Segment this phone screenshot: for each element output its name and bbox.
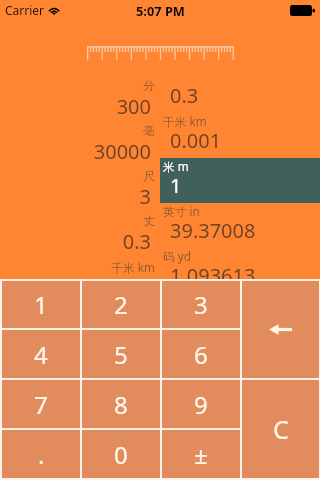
button[interactable]: 7 xyxy=(2,380,80,428)
button[interactable]: 6 xyxy=(162,330,240,378)
staticText: C xyxy=(273,412,289,446)
button[interactable]: 2 xyxy=(82,281,160,328)
button[interactable]: 千米 km xyxy=(160,113,320,158)
button[interactable]: 分 xyxy=(0,79,160,124)
staticText: 尺 xyxy=(143,169,155,184)
staticText: 39.37008 xyxy=(170,217,256,244)
button[interactable]: ± xyxy=(162,430,240,478)
staticText: 7 xyxy=(34,388,48,421)
staticText: 0 xyxy=(114,438,128,471)
staticText: 码 yd xyxy=(163,248,191,264)
button[interactable]: Backspace xyxy=(242,281,319,378)
staticText: 1.093613 xyxy=(170,262,256,289)
staticText: 4 xyxy=(34,338,48,371)
staticText: 0.0003 xyxy=(88,273,151,300)
button[interactable]: 码 yd xyxy=(160,248,320,293)
button[interactable]: C xyxy=(242,380,319,478)
staticText: ± xyxy=(194,438,208,471)
button[interactable]: 0 xyxy=(82,430,160,478)
button[interactable]: 丈 xyxy=(0,214,160,259)
button[interactable]: 8 xyxy=(82,380,160,428)
staticText: 3 xyxy=(194,288,208,321)
staticText: 千米 km xyxy=(163,113,207,129)
staticText: 丈 xyxy=(143,214,155,229)
staticText: 300 xyxy=(116,93,151,120)
button[interactable]: 米 m xyxy=(160,158,320,203)
button[interactable]: 5 xyxy=(82,330,160,378)
staticText: 3 xyxy=(139,183,151,210)
button[interactable]: 尺 xyxy=(0,169,160,214)
staticText: 2 xyxy=(114,288,128,321)
button[interactable]: 千米 km xyxy=(0,259,160,304)
button[interactable]: 0.3 xyxy=(160,68,320,113)
staticText: 6 xyxy=(194,338,208,371)
staticText: 千米 km xyxy=(111,259,155,275)
button[interactable]: 9 xyxy=(162,380,240,428)
staticText: 毫 xyxy=(143,124,155,139)
staticText: 1 xyxy=(170,172,182,199)
staticText: 0.3 xyxy=(122,228,151,255)
staticText: 1 xyxy=(34,288,48,321)
staticText: 0.001 xyxy=(170,127,222,154)
staticText: . xyxy=(38,438,45,471)
staticText: Carrier xyxy=(5,2,45,18)
button[interactable]: 1 xyxy=(2,281,80,328)
staticText: 0.3 xyxy=(170,82,199,109)
staticText: 8 xyxy=(114,388,128,421)
button[interactable]: . xyxy=(2,430,80,478)
button[interactable]: 4 xyxy=(2,330,80,378)
staticText: 9 xyxy=(194,388,208,421)
button[interactable]: 3 xyxy=(162,281,240,328)
staticText: 米 m xyxy=(163,158,189,174)
staticText: 英寸 in xyxy=(163,203,200,219)
staticText: 5:07 PM xyxy=(136,2,185,19)
button[interactable]: 毫 xyxy=(0,124,160,169)
staticText: 分 xyxy=(143,79,155,94)
button[interactable]: 英寸 in xyxy=(160,203,320,248)
staticText: 30000 xyxy=(93,138,151,165)
staticText: 5 xyxy=(114,338,128,371)
